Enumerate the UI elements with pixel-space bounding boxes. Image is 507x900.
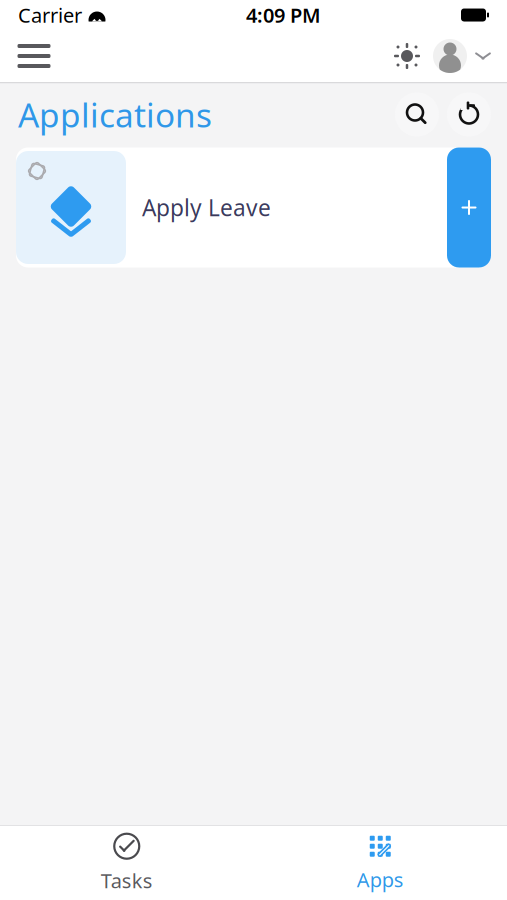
button[interactable]: Search xyxy=(395,92,439,136)
staticText: Carrier xyxy=(18,2,82,28)
staticText: Tasks xyxy=(101,867,153,894)
staticText: 4:09 PM xyxy=(246,2,321,28)
button[interactable]: Apps xyxy=(320,830,440,896)
button[interactable]: Account xyxy=(427,33,493,79)
button[interactable]: Menu xyxy=(8,33,60,79)
staticText: Apply Leave xyxy=(142,192,271,222)
button[interactable]: Refresh xyxy=(447,92,491,136)
button[interactable]: Apply Leave xyxy=(16,147,491,267)
button[interactable]: Brightness xyxy=(387,34,427,78)
staticText: Applications xyxy=(18,92,212,137)
staticText: Apps xyxy=(357,866,404,893)
button[interactable]: Tasks xyxy=(67,830,187,896)
